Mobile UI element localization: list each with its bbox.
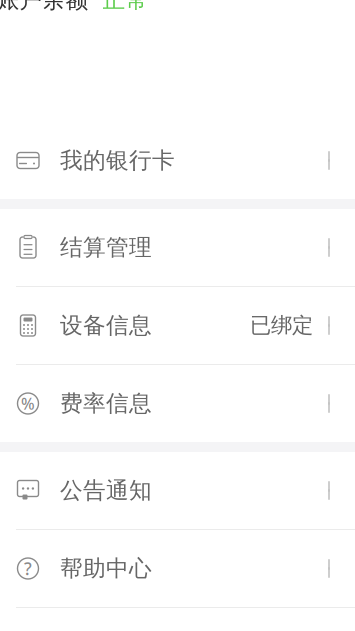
button[interactable]: 公告通知 xyxy=(0,452,355,529)
staticText: % xyxy=(21,393,35,414)
staticText: 费率信息 xyxy=(60,390,152,417)
button[interactable]: 设备信息 xyxy=(0,287,355,364)
staticText: 我的银行卡 xyxy=(60,147,175,174)
button[interactable]: ? xyxy=(0,530,355,607)
staticText: 设备信息 xyxy=(60,312,152,339)
staticText: 已绑定 xyxy=(250,312,313,339)
button[interactable]: 结算管理 xyxy=(0,209,355,286)
button[interactable]: % xyxy=(0,365,355,442)
staticText: 正常 xyxy=(102,0,148,14)
staticText: ? xyxy=(24,557,32,580)
button[interactable]: 我的银行卡 xyxy=(0,122,355,199)
staticText: 账户余额 xyxy=(0,0,88,14)
staticText: 结算管理 xyxy=(60,234,152,261)
staticText: 帮助中心 xyxy=(60,555,152,582)
staticText: 公告通知 xyxy=(60,477,152,504)
